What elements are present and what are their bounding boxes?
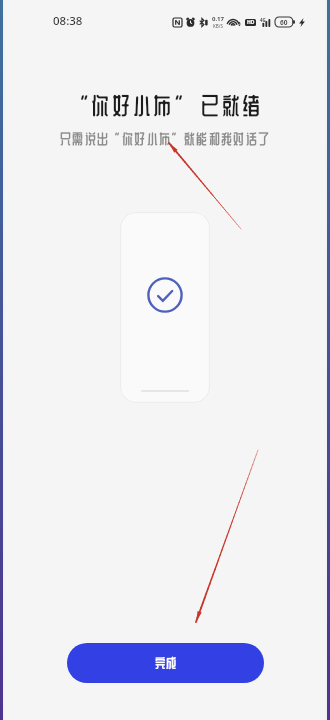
staticText: HD	[247, 19, 255, 26]
staticText: 60	[280, 18, 288, 27]
staticText: 08:38	[53, 13, 83, 29]
button[interactable]: 完成	[67, 643, 264, 683]
staticText: 4G	[260, 17, 266, 23]
staticText: 完成	[155, 655, 177, 672]
staticText: KB/S	[213, 23, 223, 29]
other: “你好小布” 已就绪	[0, 0, 330, 720]
staticText: 0.17	[212, 15, 224, 23]
